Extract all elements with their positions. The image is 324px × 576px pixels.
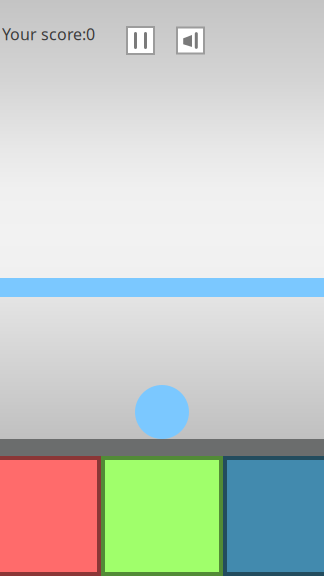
staticText: Your score:0 [2,23,95,45]
button[interactable]: Pause [127,27,154,54]
button[interactable]: Sound [177,27,204,53]
